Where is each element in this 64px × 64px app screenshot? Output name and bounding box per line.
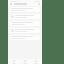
button[interactable]: Profile bbox=[32, 59, 40, 64]
button[interactable] bbox=[10, 21, 40, 26]
button[interactable]: Browse bbox=[21, 59, 29, 64]
button[interactable] bbox=[10, 35, 40, 40]
button[interactable] bbox=[10, 28, 40, 33]
button[interactable] bbox=[10, 7, 40, 12]
button[interactable] bbox=[10, 14, 40, 19]
button[interactable]: Home bbox=[10, 59, 18, 64]
